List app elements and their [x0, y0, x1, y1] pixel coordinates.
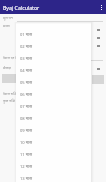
button[interactable]: 09 मास — [16, 125, 91, 137]
staticText: 02 मास — [20, 44, 33, 50]
button[interactable]: More options — [96, 2, 106, 12]
staticText: Byaj Calculator — [3, 4, 40, 11]
button[interactable]: 04 मास — [16, 65, 91, 77]
staticText: सैकड़ा — [3, 65, 12, 70]
staticText: 13 मास — [20, 176, 33, 182]
staticText: 11 मास — [20, 152, 33, 158]
staticText: 01 मास — [20, 32, 33, 38]
button[interactable]: 03 मास — [16, 53, 91, 65]
button[interactable]: 12 मास — [16, 161, 91, 173]
staticText: 08 मास — [20, 116, 33, 122]
button[interactable]: 10 मास — [16, 137, 91, 149]
button[interactable]: 11 मास — [16, 149, 91, 161]
staticText: समय — [3, 23, 10, 28]
button[interactable]: 06 मास — [16, 89, 91, 101]
staticText: 05 मास — [20, 80, 33, 86]
button[interactable] — [2, 74, 17, 83]
staticText: मूल धन — [3, 15, 13, 20]
button[interactable]: 08 मास — [16, 113, 91, 125]
button[interactable]: 01 मास — [16, 29, 91, 41]
staticText: 04 मास — [20, 68, 33, 74]
staticText: कुल राशि — [3, 98, 15, 103]
staticText: 06 मास — [20, 92, 33, 98]
button[interactable]: 02 मास — [16, 41, 91, 53]
staticText: 09 मास — [20, 128, 33, 134]
staticText: 03 मास — [20, 56, 33, 62]
staticText: 07 मास — [20, 104, 33, 110]
button[interactable]: 13 मास — [16, 173, 91, 182]
staticText: ब्याज राशि — [3, 91, 17, 96]
staticText: 10 मास — [20, 140, 33, 146]
button[interactable]: 07 मास — [16, 101, 91, 113]
button[interactable]: 05 मास — [16, 77, 91, 89]
staticText: ब्याज दर प्रति — [3, 55, 21, 60]
staticText: 12 मास — [20, 164, 33, 170]
